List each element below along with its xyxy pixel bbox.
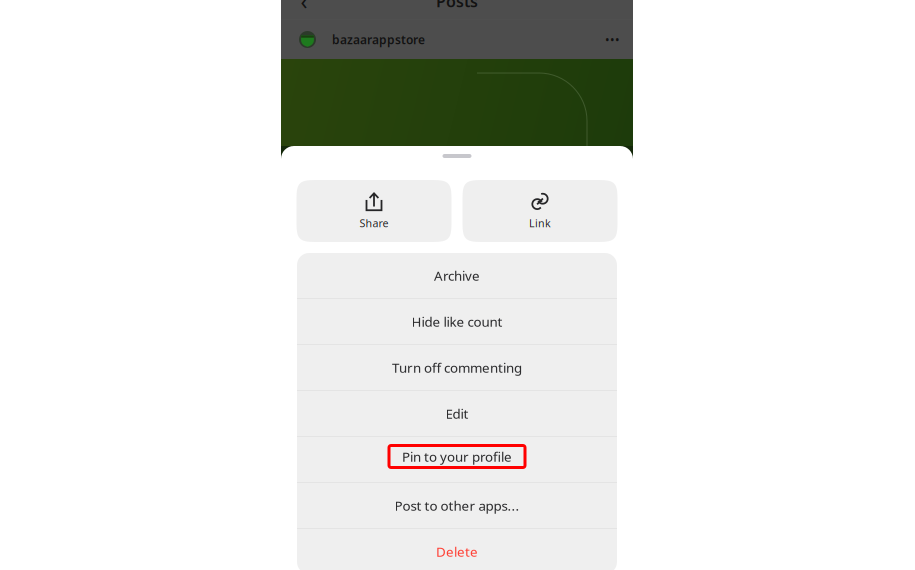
staticText: Edit (445, 405, 468, 422)
staticText: Archive (434, 267, 480, 284)
staticText: Share (359, 216, 388, 230)
staticText: ‹ (300, 0, 307, 16)
staticText: Pin to your profile (402, 448, 512, 465)
button[interactable]: Pin to your profile (297, 437, 617, 482)
button[interactable]: Hide like count (297, 299, 617, 344)
staticText: Delete (436, 543, 478, 560)
button[interactable]: Delete (297, 529, 617, 570)
button[interactable]: Share (296, 180, 451, 242)
staticText: Hide like count (411, 313, 502, 330)
staticText: Posts (436, 0, 478, 12)
staticText: Post to other apps... (394, 497, 519, 514)
button[interactable]: Back (295, 0, 313, 10)
button[interactable]: Turn off commenting (297, 345, 617, 390)
staticText: bazaarappstore (332, 31, 425, 47)
staticText: Link (529, 216, 551, 230)
button[interactable]: Link (462, 180, 617, 242)
button[interactable]: bazaarappstore (281, 20, 633, 59)
button[interactable]: Edit (297, 391, 617, 436)
staticText: Turn off commenting (392, 359, 522, 376)
button[interactable]: Archive (297, 253, 617, 298)
staticText: ••• (605, 31, 620, 47)
button[interactable]: Post to other apps... (297, 483, 617, 528)
